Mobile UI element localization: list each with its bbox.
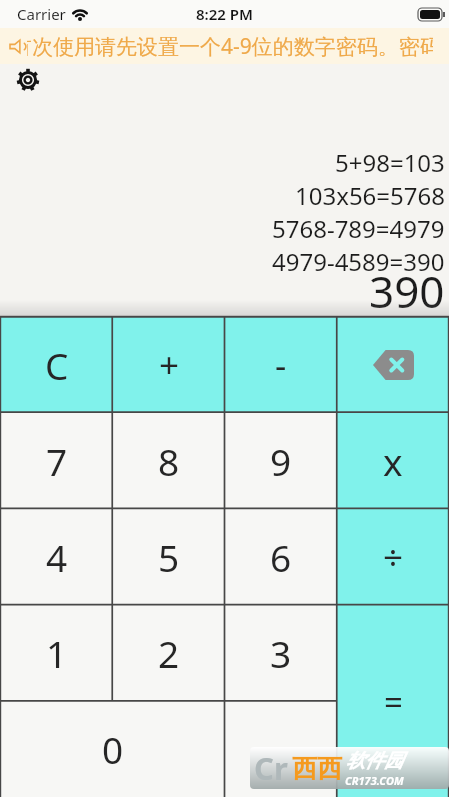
button[interactable]: 9: [225, 413, 337, 509]
staticText: Carrier: [17, 4, 66, 24]
staticText: -: [275, 341, 287, 389]
button[interactable]: 4: [0, 509, 113, 605]
staticText: 2: [158, 628, 180, 678]
staticText: 8:22 PM: [196, 4, 253, 24]
button[interactable]: 5: [113, 509, 225, 605]
button[interactable]: 8: [113, 413, 225, 509]
staticText: 4979-4589=390: [272, 245, 445, 278]
button[interactable]: 0: [0, 701, 225, 797]
staticText: ÷: [383, 533, 404, 581]
button[interactable]: +: [113, 316, 225, 413]
staticText: 5768-789=4979: [272, 212, 445, 245]
staticText: 6: [270, 532, 292, 582]
button[interactable]: 6: [225, 509, 337, 605]
button[interactable]: =: [337, 605, 449, 797]
staticText: 7: [46, 436, 68, 486]
staticText: 5: [158, 532, 180, 582]
staticText: x: [383, 436, 403, 486]
staticText: 0: [102, 724, 124, 774]
staticText: 8: [158, 436, 180, 486]
staticText: 5+98=103: [335, 146, 445, 179]
button[interactable]: 7: [0, 413, 113, 509]
staticText: 西西: [292, 753, 342, 784]
button[interactable]: 首次使用请先设置一个4-9位的数字密码。密码设置后: [0, 28, 449, 64]
button[interactable]: [225, 701, 337, 797]
staticText: Cr: [254, 747, 288, 789]
staticText: 4: [46, 532, 68, 582]
staticText: 103x56=5768: [295, 179, 445, 212]
staticText: =: [384, 679, 403, 724]
staticText: 首次使用请先设置一个4-9位的数字密码。密码设置后: [27, 32, 433, 61]
staticText: C: [45, 340, 69, 390]
button[interactable]: ÷: [337, 509, 449, 605]
button[interactable]: [16, 68, 40, 92]
button[interactable]: 3: [225, 605, 337, 701]
staticText: 390: [369, 261, 445, 321]
staticText: 1: [46, 628, 68, 678]
button[interactable]: C: [0, 316, 113, 413]
staticText: 3: [270, 628, 292, 678]
button[interactable]: x: [337, 413, 449, 509]
button[interactable]: -: [225, 316, 337, 413]
staticText: 9: [270, 436, 292, 486]
button[interactable]: [337, 316, 449, 413]
staticText: CR173.COM: [345, 773, 404, 788]
button[interactable]: 1: [0, 605, 113, 701]
button[interactable]: 2: [113, 605, 225, 701]
staticText: +: [159, 341, 180, 389]
staticText: 软件园: [346, 749, 403, 773]
